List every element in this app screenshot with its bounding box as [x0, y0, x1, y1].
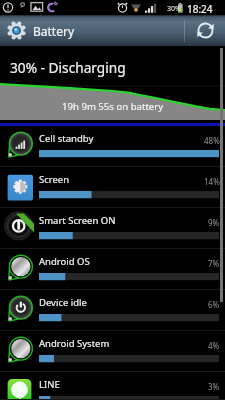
staticText: 6%: [208, 299, 220, 310]
button[interactable]: Android OS: [0, 249, 225, 290]
button[interactable]: Refresh: [185, 15, 225, 46]
button[interactable]: Screen: [0, 167, 225, 208]
staticText: Device idle: [39, 296, 87, 309]
staticText: 30%: [167, 4, 181, 14]
staticText: 19h 9m 55s on battery: [62, 100, 164, 113]
button[interactable]: Cell standby: [0, 126, 225, 167]
button[interactable]: Android System: [0, 331, 225, 372]
staticText: Android System: [39, 337, 110, 350]
staticText: LINE: [39, 378, 60, 391]
staticText: 48%: [204, 135, 220, 146]
button[interactable]: LINE: [0, 372, 225, 400]
staticText: 7%: [208, 258, 220, 269]
staticText: 18:24: [187, 2, 213, 16]
button[interactable]: Smart Screen ON: [0, 208, 225, 249]
staticText: Smart Screen ON: [39, 214, 116, 227]
staticText: Cell standby: [39, 132, 94, 145]
button[interactable]: Device idle: [0, 290, 225, 331]
staticText: Android OS: [39, 255, 90, 268]
staticText: 14%: [204, 176, 220, 187]
staticText: 9%: [208, 217, 220, 228]
staticText: 3%: [208, 381, 220, 392]
staticText: Battery: [33, 23, 75, 39]
staticText: 4%: [208, 340, 220, 351]
staticText: Screen: [39, 173, 70, 186]
staticText: 30% - Discharging: [10, 58, 126, 77]
